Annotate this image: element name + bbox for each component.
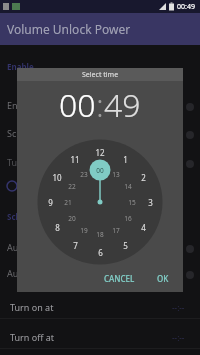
- staticText: Enable: [7, 61, 34, 72]
- staticText: 23: [80, 170, 88, 179]
- staticText: 00:49: [177, 2, 195, 12]
- staticText: 00: [59, 83, 96, 123]
- staticText: 1: [123, 154, 128, 165]
- staticText: 6: [98, 247, 103, 258]
- staticText: Auto on: [7, 241, 41, 253]
- staticText: 20: [68, 214, 76, 223]
- staticText: 22: [68, 182, 76, 191]
- staticText: Auto off: [7, 267, 41, 279]
- staticText: 15: [128, 198, 136, 207]
- staticText: 19: [80, 226, 88, 235]
- staticText: 2: [141, 172, 146, 183]
- staticText: 13: [112, 170, 120, 179]
- staticText: 12: [95, 147, 105, 158]
- staticText: Select time: [82, 70, 119, 80]
- staticText: OK: [157, 273, 169, 284]
- staticText: :: [96, 83, 104, 123]
- staticText: 7: [73, 240, 78, 251]
- staticText: --:--: [172, 302, 185, 313]
- staticText: 10: [52, 172, 62, 183]
- staticText: Screen off: [7, 127, 50, 139]
- staticText: 4: [141, 222, 146, 233]
- staticText: 00: [96, 166, 104, 175]
- staticText: 9: [48, 197, 53, 208]
- staticText: 18: [96, 230, 104, 239]
- staticText: --:--: [172, 332, 185, 343]
- staticText: 11: [70, 154, 80, 165]
- staticText: 21: [64, 198, 72, 207]
- staticText: Enable: [7, 99, 36, 111]
- staticText: 14: [124, 182, 132, 191]
- staticText: 16: [124, 214, 132, 223]
- staticText: 5: [123, 240, 128, 251]
- staticText: CANCEL: [104, 273, 135, 284]
- staticText: 3: [148, 197, 153, 208]
- staticText: Volume Unlock Power: [7, 21, 131, 37]
- staticText: Turn off at: [10, 331, 55, 343]
- staticText: Turn on at: [10, 301, 54, 313]
- staticText: Schedule: [7, 211, 43, 222]
- staticText: 49: [104, 83, 141, 123]
- staticText: 8: [55, 222, 60, 233]
- staticText: 17: [112, 226, 120, 235]
- staticText: Turn on: [7, 156, 40, 168]
